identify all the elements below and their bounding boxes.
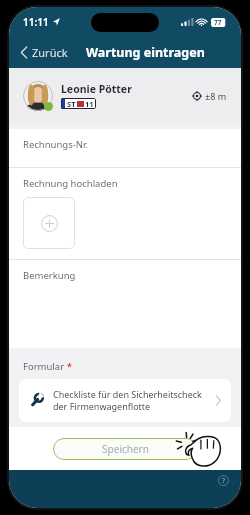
staticText: ±8 m	[205, 90, 227, 102]
staticText: Rechnungs-Nr.	[23, 138, 88, 151]
button[interactable]: Bemerkung	[9, 260, 241, 348]
button[interactable]: Rechnungs-Nr.	[9, 129, 241, 167]
staticText: ST	[67, 99, 76, 109]
staticText: ?	[222, 476, 226, 486]
button[interactable]: Hilfe	[218, 475, 229, 486]
staticText: Rechnung hochladen	[23, 177, 118, 190]
staticText: Zurück	[32, 45, 68, 60]
staticText: 77	[214, 18, 222, 27]
staticText: Leonie Pötter	[61, 82, 132, 96]
staticText: Formular	[23, 360, 65, 373]
button[interactable]: Checkliste für den Sicherheitscheck der …	[19, 379, 231, 422]
staticText: *	[67, 360, 72, 372]
staticText: 11	[85, 99, 94, 109]
staticText: Checkliste für den Sicherheitscheck der …	[53, 388, 210, 413]
other: GPS accuracy	[192, 91, 202, 101]
staticText: Bemerkung	[23, 269, 76, 282]
button[interactable]: Leonie Pötter	[9, 68, 241, 123]
staticText: 11:11	[23, 15, 49, 29]
button[interactable]: Zurück	[9, 41, 76, 64]
staticText: Wartung eintragen	[86, 44, 205, 61]
button[interactable]: Rechnung hochladen	[23, 197, 75, 249]
staticText: Speichern	[102, 442, 149, 456]
button[interactable]: Speichern	[53, 438, 197, 460]
